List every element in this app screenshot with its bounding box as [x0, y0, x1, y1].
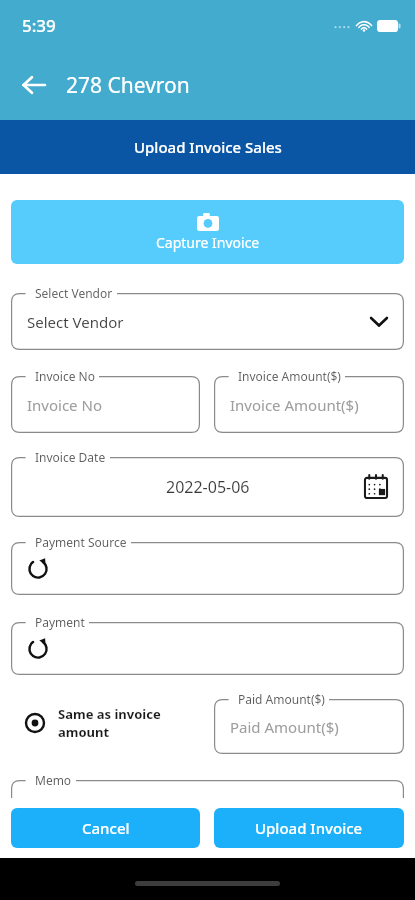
staticText: Payment	[35, 614, 85, 630]
button[interactable]: Memo	[11, 772, 404, 840]
staticText: Upload Invoice Sales	[134, 137, 282, 157]
staticText: 5:39	[22, 14, 56, 37]
button[interactable]: Same as invoice amount	[11, 705, 214, 741]
staticText: Select Vendor	[27, 312, 370, 332]
staticText: Payment Source	[35, 534, 127, 550]
staticText: Upload Invoice	[255, 818, 363, 838]
staticText: Invoice Amount($)	[230, 395, 359, 415]
staticText: Invoice No	[27, 395, 102, 415]
button[interactable]: Invoice Amount($)	[214, 368, 404, 433]
staticText: Capture Invoice	[156, 233, 260, 252]
button[interactable]: Upload Invoice Sales	[0, 120, 415, 174]
staticText: Invoice Amount($)	[238, 368, 341, 384]
button[interactable]: Pick date	[360, 471, 392, 503]
staticText: Invoice No	[35, 368, 95, 384]
button[interactable]: Payment Source	[11, 534, 404, 595]
staticText: 2022-05-06	[166, 476, 250, 498]
button[interactable]: Back	[10, 61, 58, 109]
staticText: Paid Amount($)	[230, 717, 339, 737]
staticText: Same as invoice amount	[58, 705, 214, 741]
button[interactable]: Payment	[11, 614, 404, 675]
staticText: Memo	[35, 772, 72, 788]
button[interactable]: Select Vendor	[11, 285, 404, 350]
staticText: Select Vendor	[35, 285, 113, 301]
staticText: Cancel	[82, 818, 130, 838]
button[interactable]: Paid Amount($)	[214, 691, 404, 754]
button[interactable]: Capture Invoice	[11, 200, 404, 264]
button[interactable]: Cancel	[11, 808, 200, 848]
button[interactable]: 2022-05-06	[11, 449, 404, 517]
staticText: Invoice Date	[35, 449, 106, 465]
staticText: Paid Amount($)	[238, 691, 325, 707]
staticText: 278 Chevron	[66, 71, 190, 100]
button[interactable]: Upload Invoice	[214, 808, 404, 848]
button[interactable]: Invoice No	[11, 368, 200, 433]
